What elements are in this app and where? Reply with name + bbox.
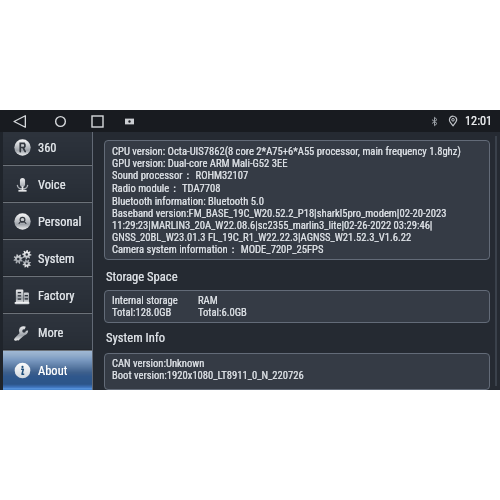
button[interactable]: Back — [8, 110, 30, 132]
button[interactable]: System — [3, 240, 92, 277]
staticText: Total:6.0GB — [198, 306, 247, 318]
button[interactable]: Factory — [3, 277, 92, 314]
button[interactable]: Voice — [3, 166, 92, 203]
staticText: Storage Space — [106, 269, 178, 284]
staticText: 12:01 — [465, 114, 493, 128]
button[interactable]: About — [3, 351, 92, 390]
staticText: Voice — [38, 177, 66, 192]
staticText: Factory — [38, 288, 75, 303]
button[interactable]: Home — [49, 110, 71, 132]
staticText: RAM — [198, 294, 218, 306]
staticText: About — [38, 363, 68, 378]
staticText: Internal storage — [112, 294, 178, 306]
staticText: CAN version:Unknown — [112, 357, 205, 369]
button[interactable]: Recent apps — [86, 110, 108, 132]
staticText: System Info — [106, 330, 166, 345]
staticText: 360 — [38, 140, 57, 155]
staticText: Boot version:1920x1080_LT8911_0_N_220726 — [112, 369, 304, 381]
button[interactable]: Personal — [3, 203, 92, 240]
staticText: Total:128.0GB — [112, 306, 172, 318]
staticText: Personal — [38, 214, 82, 229]
staticText: System — [38, 251, 75, 266]
staticText: More — [38, 325, 64, 340]
button[interactable]: More — [3, 314, 92, 351]
button[interactable]: 360 — [3, 129, 92, 166]
button[interactable]: Screenshot — [118, 110, 140, 132]
staticText: CPU version: Octa-UIS7862(8 core 2*A75+6… — [112, 145, 461, 256]
